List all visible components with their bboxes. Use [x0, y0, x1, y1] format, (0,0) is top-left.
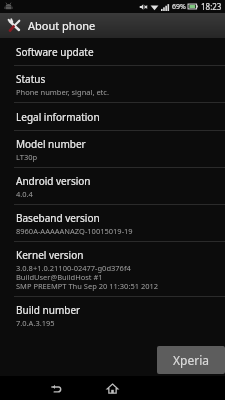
staticText: 18:23: [201, 1, 222, 12]
button[interactable]: Status: [0, 66, 225, 102]
staticText: Model number: [16, 137, 86, 151]
button[interactable]: Home: [75, 376, 150, 400]
button[interactable]: About phone: [0, 13, 225, 38]
staticText: 7.0.A.3.195: [16, 318, 55, 328]
button[interactable]: Build number: [0, 297, 225, 333]
button[interactable]: Android version: [0, 168, 225, 204]
staticText: Baseband version: [16, 211, 100, 225]
staticText: Android version: [16, 174, 91, 188]
staticText: 8960A-AAAAANAZQ-10015019-19: [16, 226, 133, 236]
button[interactable]: Kernel version: [0, 242, 225, 296]
staticText: Legal information: [16, 110, 100, 124]
staticText: Phone number, signal, etc.: [16, 87, 109, 97]
staticText: 4.0.4: [16, 189, 33, 199]
staticText: About phone: [28, 18, 96, 33]
staticText: Software update: [16, 45, 94, 59]
staticText: Kernel version: [16, 248, 84, 262]
staticText: LT30p: [16, 152, 38, 162]
staticText: 69%: [172, 2, 186, 12]
button[interactable]: Model number: [0, 131, 225, 167]
button[interactable]: Back: [18, 376, 93, 400]
button[interactable]: Baseband version: [0, 205, 225, 241]
staticText: 3.0.8+1.0.21100-02477-g0d376f4 BuildUser…: [16, 263, 159, 291]
button[interactable]: Legal information: [0, 103, 225, 130]
staticText: Xperia: [173, 352, 209, 368]
staticText: Build number: [16, 303, 81, 317]
button[interactable]: Software update: [0, 38, 225, 65]
staticText: Status: [16, 72, 46, 86]
